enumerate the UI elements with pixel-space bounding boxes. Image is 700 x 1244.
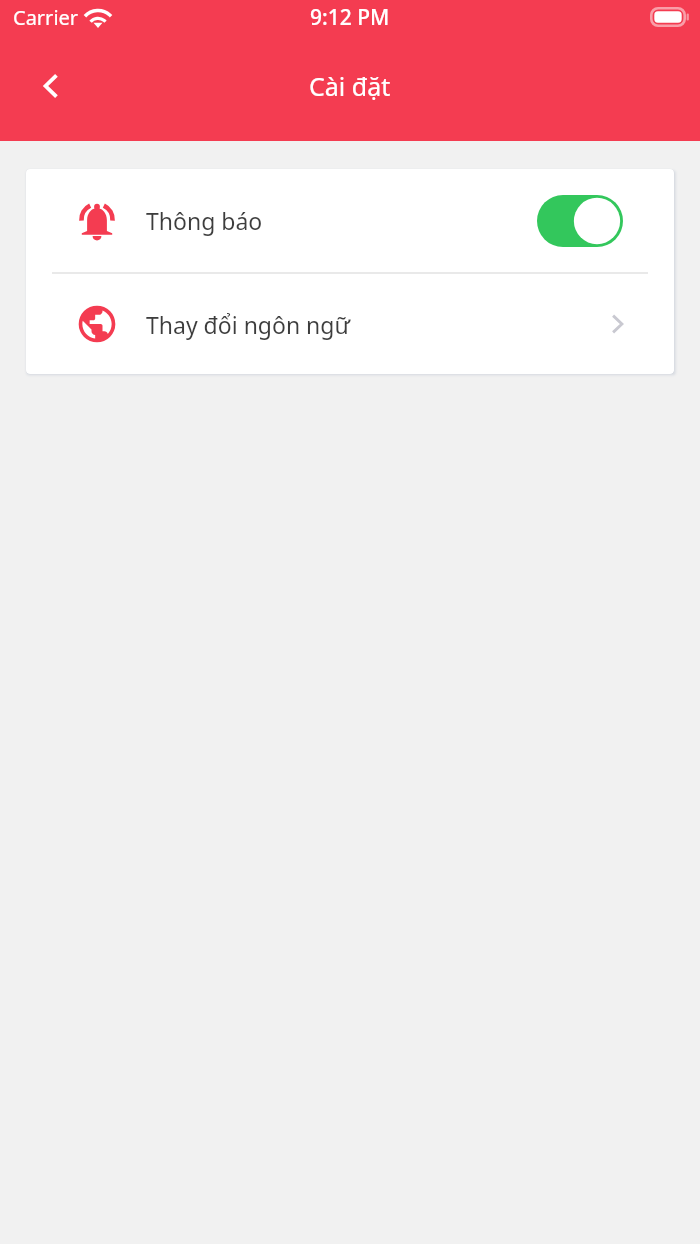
staticText: Carrier bbox=[13, 4, 79, 31]
staticText: Thông báo bbox=[146, 205, 263, 236]
button[interactable]: Thay đổi ngôn ngữ bbox=[26, 274, 674, 374]
button[interactable]: Back bbox=[25, 60, 77, 112]
button[interactable]: Thông báo bbox=[26, 169, 674, 272]
staticText: Cài đặt bbox=[309, 69, 391, 103]
staticText: Thay đổi ngôn ngữ bbox=[146, 309, 350, 340]
button[interactable]: Bật thông báo bbox=[537, 195, 623, 247]
staticText: 9:12 PM bbox=[310, 3, 390, 32]
